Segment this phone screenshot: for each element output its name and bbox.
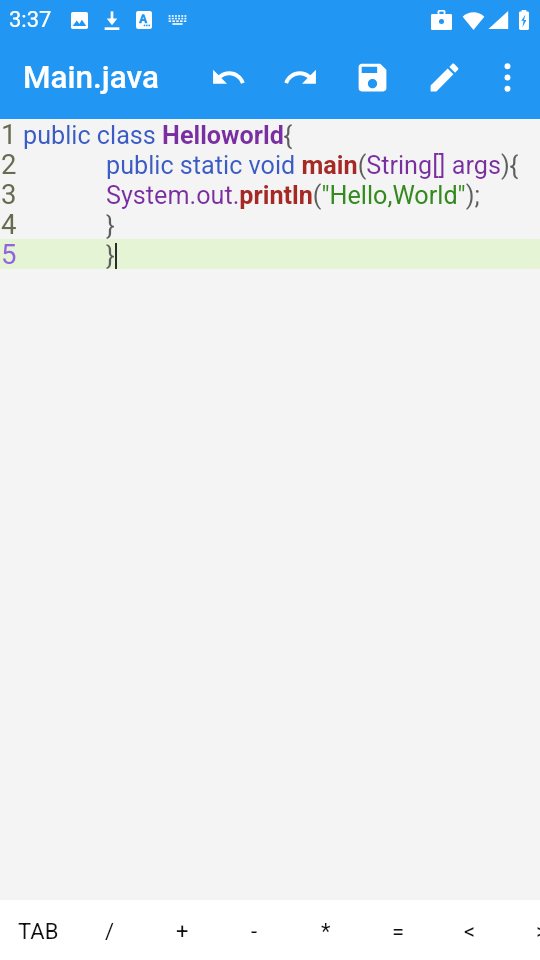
button[interactable]: + (146, 900, 218, 960)
button[interactable]: * (290, 900, 362, 960)
staticText: < (464, 919, 476, 945)
button[interactable]: Undo (204, 53, 252, 101)
button[interactable]: TAB (2, 900, 74, 960)
button[interactable]: > (506, 900, 540, 960)
button[interactable]: More options (483, 53, 531, 101)
staticText: } (106, 211, 115, 241)
staticText: TAB (18, 919, 59, 945)
staticText: 3 (1, 178, 17, 208)
staticText: 1 (1, 118, 17, 148)
staticText: - (251, 919, 258, 945)
staticText: + (176, 919, 189, 945)
staticText: System.out.println("Hello,World"); (106, 181, 480, 211)
staticText: } (106, 241, 115, 271)
staticText: public class Helloworld{ (23, 121, 293, 151)
staticText: = (392, 919, 405, 945)
staticText: 2 (1, 148, 17, 178)
button[interactable]: / (74, 900, 146, 960)
button[interactable]: < (434, 900, 506, 960)
button[interactable]: - (218, 900, 290, 960)
button[interactable]: Redo (276, 53, 324, 101)
staticText: 3:37 (9, 7, 52, 33)
staticText: / (105, 919, 115, 945)
button[interactable]: Save (348, 53, 396, 101)
button[interactable]: = (362, 900, 434, 960)
staticText: > (536, 919, 540, 945)
button[interactable]: Edit (420, 53, 468, 101)
staticText: Main.java (23, 59, 159, 96)
staticText: 5 (1, 238, 17, 268)
staticText: public static void main(String[] args){ (106, 151, 519, 181)
staticText: * (321, 919, 331, 945)
staticText: 4 (1, 208, 17, 238)
